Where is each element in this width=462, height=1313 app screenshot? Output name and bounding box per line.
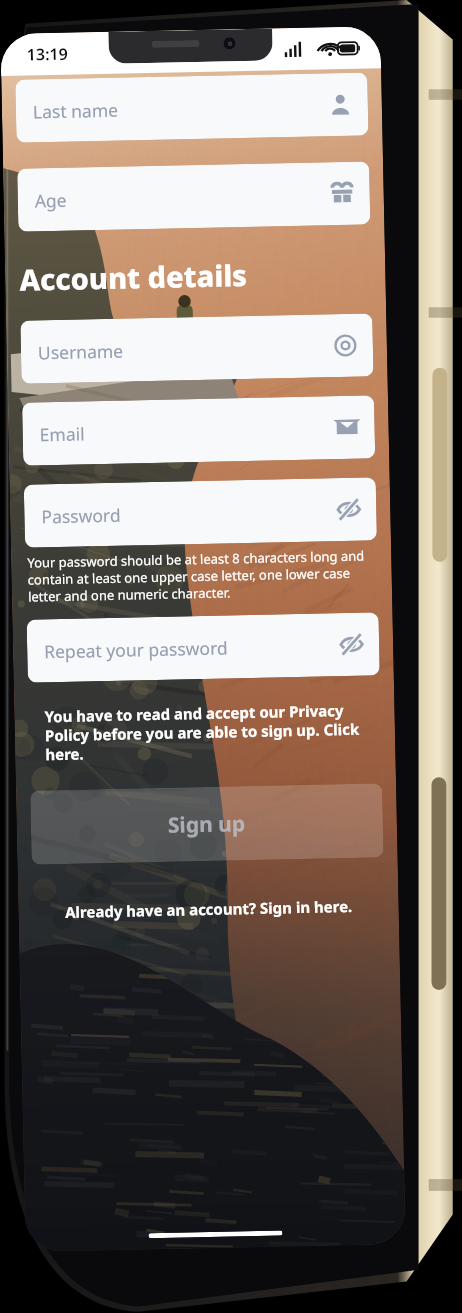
staticText: Your password should be at least 8 chara… <box>27 546 376 606</box>
button[interactable]: Email <box>22 395 375 466</box>
other: Person <box>329 93 352 116</box>
button[interactable]: Last name <box>15 72 368 143</box>
staticText: Age <box>34 182 331 212</box>
staticText: Email <box>39 416 336 446</box>
button[interactable]: Username <box>20 313 373 384</box>
button[interactable]: You have to read and accept our Privacy … <box>44 700 365 764</box>
button[interactable]: Age <box>17 161 370 232</box>
other: Email <box>335 416 359 439</box>
staticText: Account details <box>19 255 248 299</box>
other: Username <box>334 334 357 357</box>
button[interactable]: Repeat your password <box>27 612 380 683</box>
staticText: Repeat your password <box>44 633 340 663</box>
staticText: Last name <box>33 93 329 123</box>
button[interactable]: Password <box>24 477 377 548</box>
staticText: 13:19 <box>26 43 69 66</box>
other: Birthday <box>330 182 354 205</box>
other: Show password <box>340 633 363 656</box>
button[interactable]: Sign up <box>30 783 384 865</box>
staticText: Password <box>41 498 337 528</box>
button[interactable]: Already have an account? Sign in here. <box>18 891 399 927</box>
other: Show password <box>337 498 361 521</box>
staticText: Sign up <box>168 809 246 840</box>
staticText: Username <box>38 334 334 364</box>
